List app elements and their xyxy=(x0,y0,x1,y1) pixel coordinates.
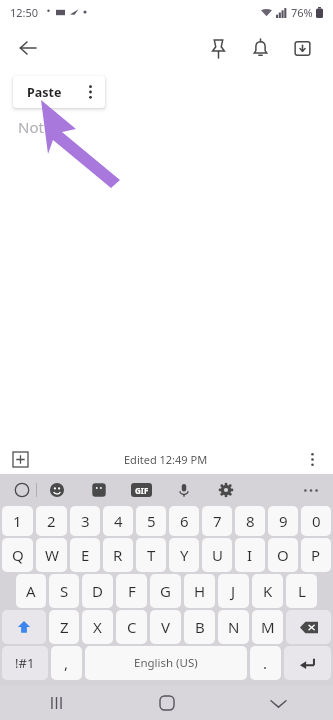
button[interactable]: 3 xyxy=(70,506,100,536)
button[interactable]: !#1 xyxy=(2,646,48,680)
staticText: , xyxy=(64,653,69,673)
button[interactable]: 6 xyxy=(169,506,199,536)
button[interactable]: E xyxy=(70,538,100,572)
button[interactable]: 5 xyxy=(136,506,166,536)
staticText: 8 xyxy=(246,511,255,531)
staticText: P xyxy=(311,545,321,565)
staticText: N xyxy=(228,617,240,637)
button[interactable]: H xyxy=(184,574,215,608)
button[interactable]: Recents xyxy=(39,686,73,720)
button[interactable]: Paste xyxy=(13,76,105,108)
button[interactable]: B xyxy=(184,610,215,644)
staticText: H xyxy=(194,581,206,601)
button[interactable]: , xyxy=(51,646,82,680)
staticText: V xyxy=(161,617,171,637)
button[interactable]: Enter xyxy=(284,646,331,680)
button[interactable]: 8 xyxy=(235,506,265,536)
staticText: R xyxy=(113,545,123,565)
staticText: W xyxy=(45,545,59,565)
button[interactable]: C xyxy=(116,610,147,644)
staticText: S xyxy=(60,581,69,601)
button[interactable]: Sticker xyxy=(89,480,109,500)
staticText: 0 xyxy=(312,511,321,531)
staticText: A xyxy=(26,581,36,601)
staticText: 3 xyxy=(81,511,90,531)
staticText: 1 xyxy=(13,511,22,531)
button[interactable]: Hide keyboard xyxy=(261,686,295,720)
staticText: I xyxy=(247,545,253,565)
button[interactable]: Translate xyxy=(12,480,32,500)
button[interactable]: Settings xyxy=(216,480,236,500)
staticText: C xyxy=(127,617,137,637)
button[interactable]: Emoji xyxy=(47,480,67,500)
button[interactable]: X xyxy=(82,610,113,644)
button[interactable]: 2 xyxy=(36,506,67,536)
staticText: 2 xyxy=(47,511,56,531)
staticText: . xyxy=(263,653,268,673)
staticText: E xyxy=(81,545,90,565)
button[interactable]: Reminder xyxy=(239,27,281,69)
staticText: M xyxy=(261,617,275,637)
button[interactable]: . xyxy=(250,646,281,680)
button[interactable]: 7 xyxy=(202,506,232,536)
staticText: Y xyxy=(180,545,189,565)
button[interactable]: S xyxy=(49,574,79,608)
staticText: B xyxy=(195,617,205,637)
staticText: F xyxy=(128,581,136,601)
button[interactable]: G xyxy=(150,574,181,608)
staticText: !#1 xyxy=(15,654,35,672)
button[interactable]: M xyxy=(252,610,283,644)
button[interactable]: N xyxy=(218,610,249,644)
staticText: K xyxy=(263,581,273,601)
button[interactable]: 0 xyxy=(301,506,331,536)
staticText: 12:50 xyxy=(10,5,39,20)
button[interactable]: P xyxy=(301,538,331,572)
button[interactable]: 1 xyxy=(2,506,33,536)
staticText: U xyxy=(212,545,223,565)
button[interactable]: T xyxy=(136,538,166,572)
button[interactable]: K xyxy=(252,574,283,608)
button[interactable]: Archive xyxy=(281,27,323,69)
staticText: Paste xyxy=(27,84,62,101)
staticText: L xyxy=(298,581,306,601)
staticText: G xyxy=(160,581,171,601)
button[interactable]: A xyxy=(16,574,46,608)
button[interactable]: More options xyxy=(299,446,325,472)
staticText: 5 xyxy=(147,511,156,531)
button[interactable]: W xyxy=(36,538,67,572)
button[interactable]: Z xyxy=(49,610,79,644)
button[interactable]: 9 xyxy=(268,506,298,536)
staticText: Note xyxy=(18,117,53,137)
button[interactable]: V xyxy=(150,610,181,644)
button[interactable]: D xyxy=(82,574,113,608)
button[interactable]: R xyxy=(103,538,133,572)
button[interactable]: English (US) xyxy=(85,646,247,680)
button[interactable]: Backspace xyxy=(286,610,331,644)
button[interactable]: U xyxy=(202,538,232,572)
staticText: GIF xyxy=(135,485,149,496)
staticText: Z xyxy=(60,617,69,637)
button[interactable]: Q xyxy=(2,538,33,572)
button[interactable]: Y xyxy=(169,538,199,572)
button[interactable]: More xyxy=(301,480,321,500)
staticText: Q xyxy=(12,545,24,565)
button[interactable]: 4 xyxy=(103,506,133,536)
button[interactable]: F xyxy=(116,574,147,608)
button[interactable]: L xyxy=(286,574,317,608)
staticText: O xyxy=(277,545,289,565)
button[interactable]: Pin xyxy=(197,27,239,69)
button[interactable]: Add xyxy=(7,446,33,472)
staticText: 4 xyxy=(114,511,123,531)
staticText: Edited 12:49 PM xyxy=(124,452,208,467)
button[interactable]: Back xyxy=(8,28,48,68)
button[interactable]: GIF xyxy=(131,483,152,497)
staticText: 9 xyxy=(279,511,288,531)
button[interactable]: J xyxy=(218,574,249,608)
button[interactable]: Home xyxy=(150,686,184,720)
button[interactable]: I xyxy=(235,538,265,572)
button[interactable]: Shift xyxy=(2,610,46,644)
button[interactable]: Voice input xyxy=(174,480,194,500)
button[interactable]: O xyxy=(268,538,298,572)
staticText: T xyxy=(147,545,156,565)
staticText: X xyxy=(93,617,102,637)
